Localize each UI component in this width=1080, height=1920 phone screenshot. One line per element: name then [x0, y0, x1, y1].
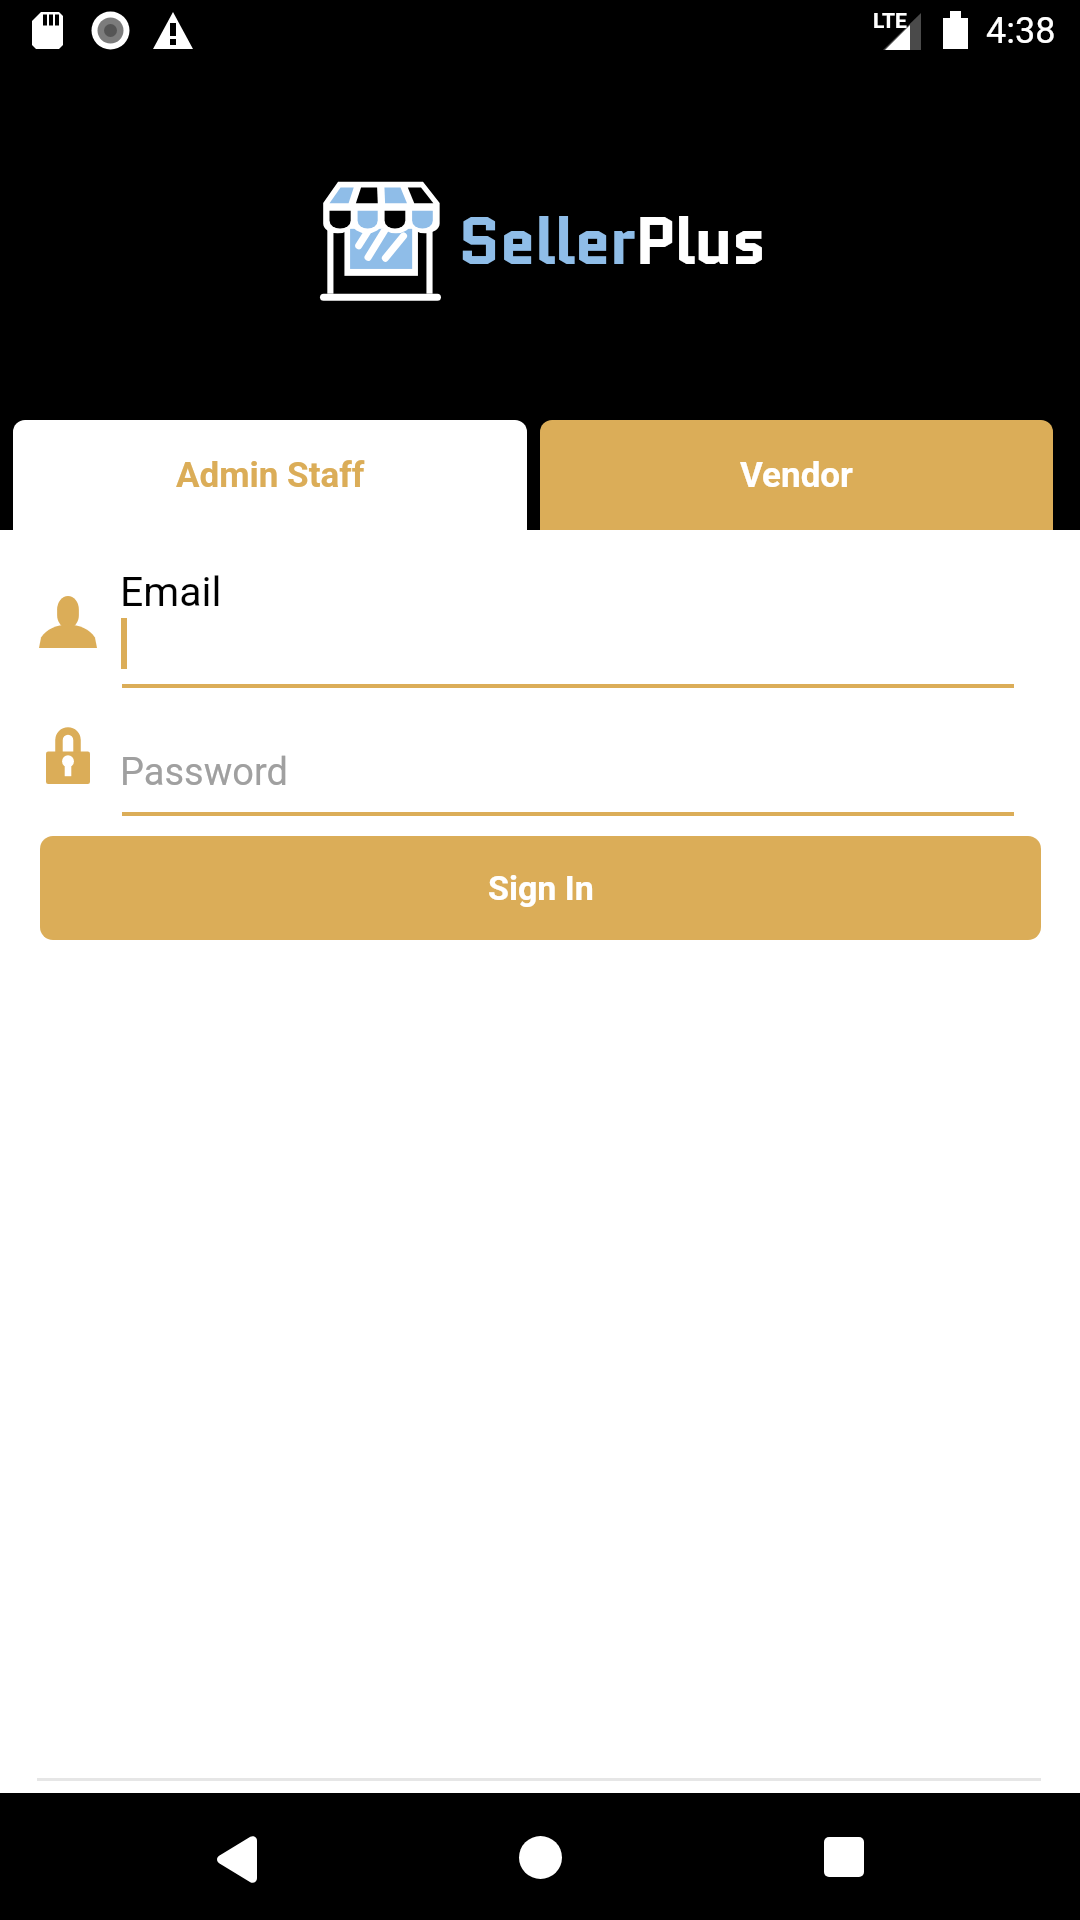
button[interactable]: Recents [784, 1797, 904, 1917]
staticText: 4:38 [986, 10, 1056, 52]
button[interactable]: Email [0, 560, 1080, 690]
staticText: Email [120, 568, 222, 616]
staticText: Admin Staff [176, 455, 365, 496]
button[interactable]: Back [177, 1799, 297, 1919]
button[interactable]: Admin Staff [13, 420, 527, 542]
staticText: LTE [873, 9, 907, 34]
staticText: Password [120, 750, 288, 795]
staticText: Sign In [488, 868, 594, 908]
staticText: Seller [458, 195, 635, 288]
button[interactable]: Home [480, 1797, 600, 1917]
button[interactable]: Sign In [40, 836, 1041, 940]
button[interactable]: Vendor [540, 420, 1053, 542]
staticText: Vendor [740, 455, 853, 496]
staticText: Plus [635, 195, 766, 288]
button[interactable]: Password [0, 725, 1080, 815]
